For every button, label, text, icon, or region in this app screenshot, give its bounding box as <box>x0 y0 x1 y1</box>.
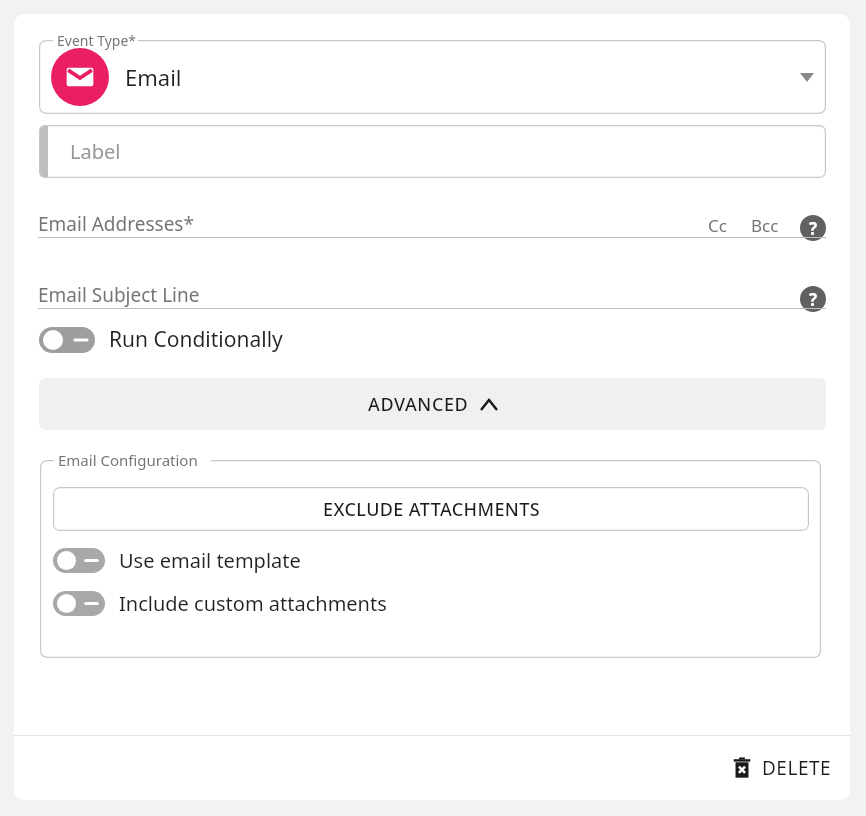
staticText: Label <box>70 138 121 165</box>
staticText: Use email template <box>119 547 301 574</box>
staticText: ADVANCED <box>368 392 469 417</box>
button[interactable]: Cc <box>702 214 733 237</box>
button[interactable]: DELETE <box>715 747 850 789</box>
staticText: Event Type* <box>57 31 137 50</box>
button[interactable]: Run Conditionally <box>39 325 283 354</box>
staticText: Include custom attachments <box>119 590 387 617</box>
button[interactable]: Email <box>39 31 826 114</box>
button[interactable]: Include custom attachments <box>53 590 387 617</box>
staticText: Cc <box>708 214 727 237</box>
button[interactable]: EXCLUDE ATTACHMENTS <box>53 487 809 531</box>
button[interactable]: Bcc <box>745 214 785 237</box>
button[interactable]: Use email template <box>53 547 301 574</box>
staticText: Email Subject Line <box>38 282 200 308</box>
staticText: Run Conditionally <box>109 325 283 354</box>
staticText: Email Configuration <box>58 450 198 470</box>
staticText: ? <box>809 288 818 311</box>
staticText: Email Addresses* <box>38 211 194 237</box>
button[interactable]: Label <box>39 125 826 178</box>
button[interactable]: ADVANCED <box>39 378 826 430</box>
staticText: ? <box>809 217 818 240</box>
button[interactable]: Email subject help <box>800 286 826 312</box>
staticText: DELETE <box>762 755 832 781</box>
button[interactable]: Email addresses help <box>800 215 826 241</box>
staticText: EXCLUDE ATTACHMENTS <box>323 497 540 522</box>
staticText: Email <box>125 62 182 92</box>
staticText: Bcc <box>751 214 779 237</box>
